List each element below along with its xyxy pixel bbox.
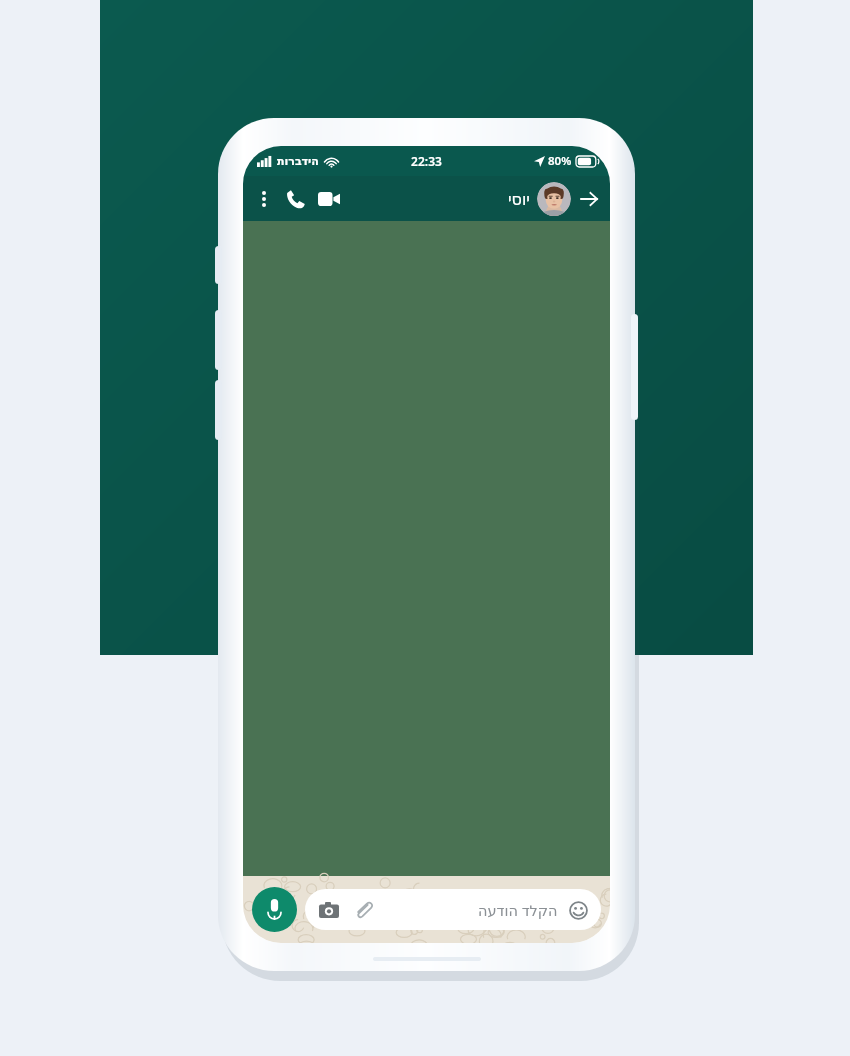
- button[interactable]: Record voice message: [252, 887, 297, 932]
- button[interactable]: Camera: [316, 897, 342, 923]
- staticText: הקלד הודעה: [478, 900, 558, 920]
- staticText: 80%: [548, 153, 572, 169]
- staticText: 22:33: [411, 153, 442, 169]
- button[interactable]: Voice call: [281, 185, 309, 213]
- button[interactable]: More options: [253, 188, 275, 210]
- button[interactable]: Emoji: [566, 898, 590, 922]
- staticText: יוסי: [508, 190, 530, 209]
- button[interactable]: Video call: [315, 185, 343, 213]
- button[interactable]: יוסי: [508, 182, 602, 216]
- button[interactable]: Camera: [305, 889, 601, 930]
- button[interactable]: Attach: [350, 897, 376, 923]
- staticText: הידברות: [277, 155, 319, 168]
- button[interactable]: Back: [576, 186, 602, 212]
